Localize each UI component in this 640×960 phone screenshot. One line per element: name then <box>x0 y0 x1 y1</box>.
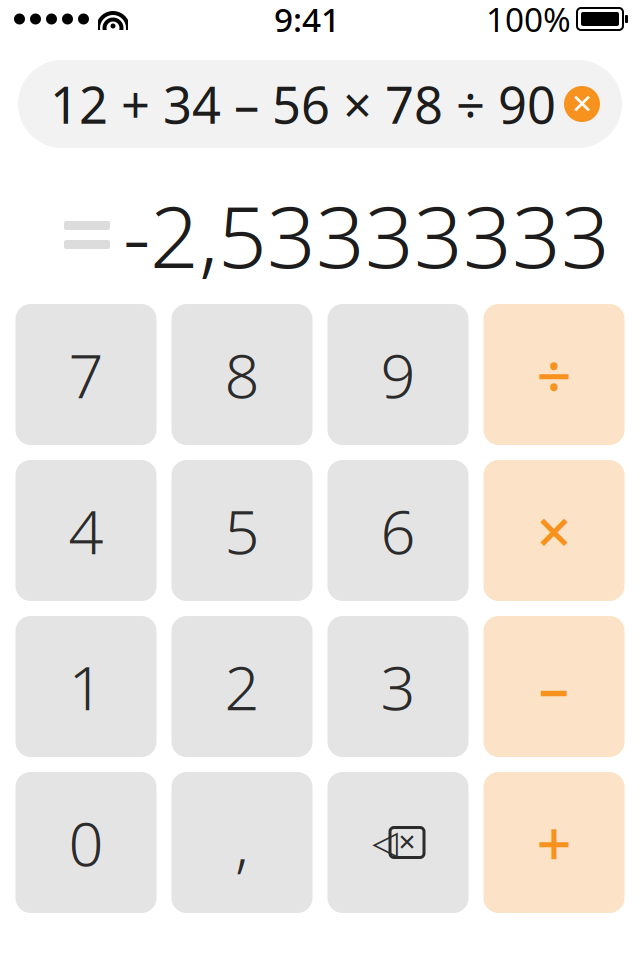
button[interactable]: 0 <box>15 772 156 913</box>
staticText: 9 <box>380 334 415 415</box>
button[interactable]: Clear <box>556 78 608 130</box>
staticText: , <box>235 802 249 883</box>
button[interactable]: Backspace <box>327 772 468 913</box>
staticText: 5 <box>224 490 259 571</box>
staticText: ◁ <box>372 824 398 861</box>
staticText: 6 <box>380 490 415 571</box>
button[interactable]: 9 <box>327 304 468 445</box>
button[interactable]: , <box>171 772 312 913</box>
staticText: ✕ <box>397 830 416 855</box>
staticText: 4 <box>68 490 103 571</box>
staticText: 0 <box>68 802 103 883</box>
button[interactable]: 4 <box>15 460 156 601</box>
staticText: 12 + 34 – 56 × 78 ÷ 90 <box>50 70 556 138</box>
staticText: 100% <box>486 0 571 41</box>
staticText: + <box>536 802 571 883</box>
button[interactable]: 5 <box>171 460 312 601</box>
staticText: × <box>536 490 571 571</box>
staticText: 2 <box>224 646 259 727</box>
staticText: ✕ <box>571 89 593 119</box>
button[interactable]: 7 <box>15 304 156 445</box>
button[interactable]: 3 <box>327 616 468 757</box>
staticText: 1 <box>68 646 103 727</box>
button[interactable]: + <box>483 772 624 913</box>
staticText: 7 <box>68 334 103 415</box>
staticText: ÷ <box>536 334 571 415</box>
button[interactable]: ÷ <box>483 304 624 445</box>
staticText: 3 <box>380 646 415 727</box>
button[interactable]: 8 <box>171 304 312 445</box>
button[interactable]: × <box>483 460 624 601</box>
button[interactable]: 1 <box>15 616 156 757</box>
staticText: – <box>538 646 569 727</box>
button[interactable]: 6 <box>327 460 468 601</box>
staticText: 9:41 <box>274 0 340 41</box>
staticText: 8 <box>224 334 259 415</box>
button[interactable]: – <box>483 616 624 757</box>
staticText: -2,53333333 <box>123 178 610 292</box>
button[interactable]: 2 <box>171 616 312 757</box>
